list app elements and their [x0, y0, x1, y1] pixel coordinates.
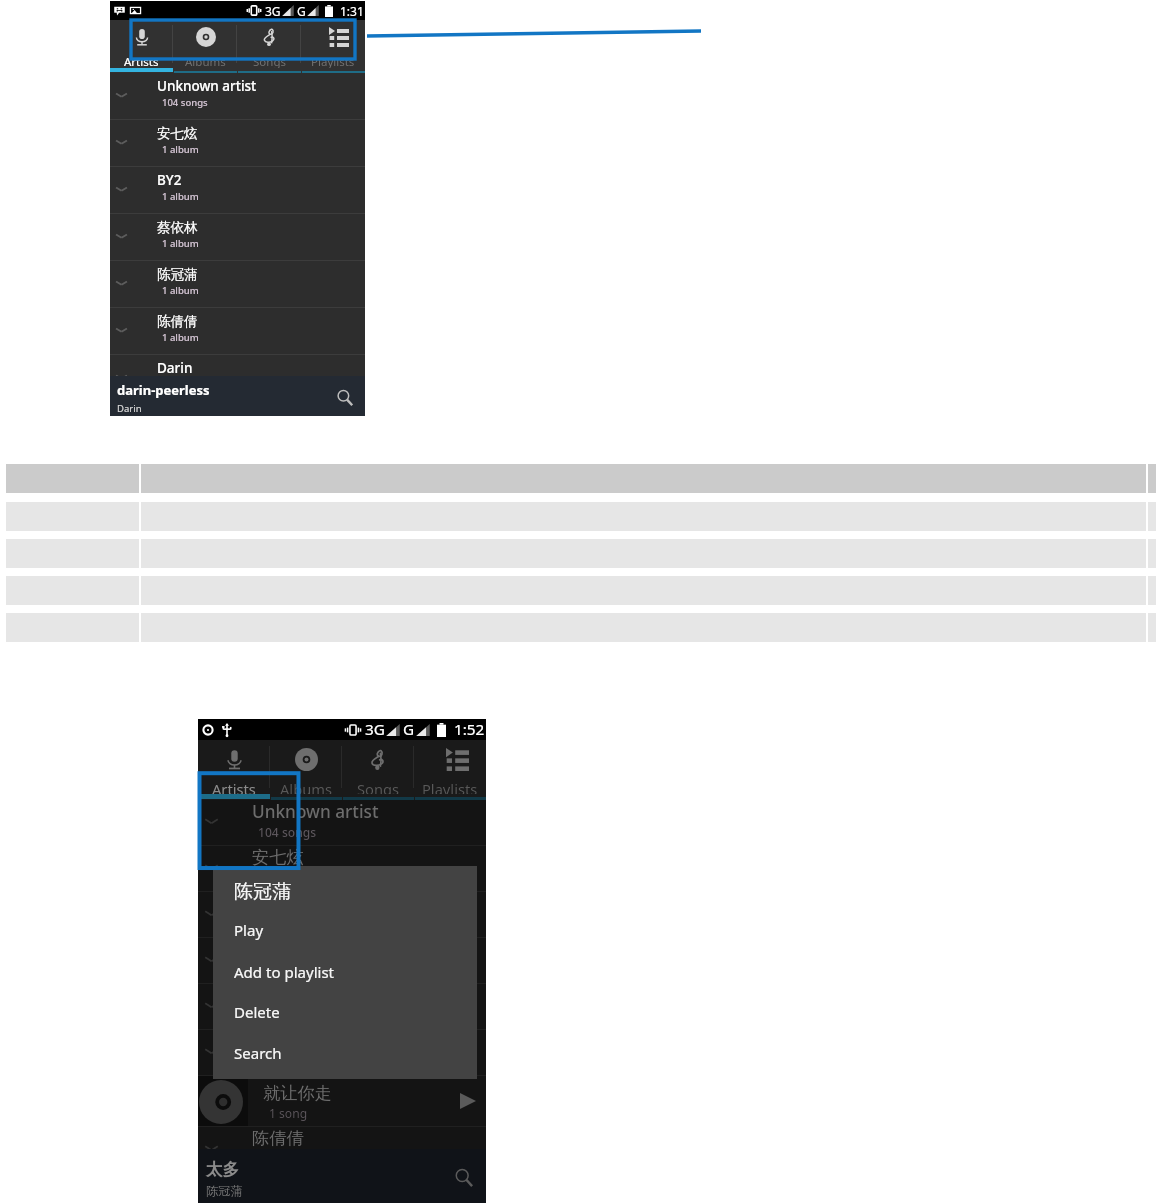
- staticText: 3G: [265, 3, 281, 19]
- staticText: 1 album: [258, 961, 305, 977]
- button[interactable]: 太多: [198, 1149, 486, 1203]
- staticText: 1:31: [340, 3, 364, 19]
- button[interactable]: 陈倩倩: [110, 308, 365, 355]
- button[interactable]: 陈冠蒲: [198, 1030, 486, 1076]
- button[interactable]: Albums: [270, 740, 342, 794]
- button[interactable]: 陈倩倩: [198, 1127, 486, 1173]
- staticText: 1 album: [162, 378, 199, 391]
- staticText: 陈冠蒲: [252, 1030, 304, 1052]
- staticText: darin-peerless: [117, 381, 210, 399]
- button[interactable]: 就让你走: [198, 1076, 486, 1127]
- staticText: 1 album: [258, 916, 305, 932]
- staticText: 1 album: [162, 190, 199, 203]
- button[interactable]: Artists: [198, 740, 270, 794]
- staticText: Unknown artist: [157, 77, 257, 95]
- staticText: Add to playlist: [234, 962, 335, 982]
- button[interactable]: Play: [213, 912, 477, 948]
- staticText: 蔡依林: [157, 219, 198, 236]
- button[interactable]: BY2: [198, 892, 486, 938]
- button[interactable]: 蔡依林: [198, 938, 486, 984]
- staticText: 陈倩倩: [252, 1127, 304, 1149]
- button[interactable]: Artists: [110, 20, 173, 68]
- staticText: 陈倩倩: [157, 313, 198, 330]
- button[interactable]: BY2: [110, 167, 365, 214]
- button[interactable]: Search: [213, 1035, 477, 1071]
- staticText: 蔡依林: [252, 938, 304, 960]
- button[interactable]: Search: [328, 381, 362, 415]
- button[interactable]: 安七炫: [198, 846, 486, 892]
- button[interactable]: Add to playlist: [213, 954, 477, 990]
- staticText: 1 album: [162, 237, 199, 250]
- staticText: 陈冠蒲: [206, 1183, 243, 1198]
- staticText: 就让你走: [263, 1082, 332, 1104]
- staticText: 1 album: [162, 284, 199, 297]
- staticText: 3G: [365, 719, 385, 740]
- staticText: Albums: [280, 779, 332, 794]
- staticText: Playlists: [422, 779, 478, 794]
- staticText: 陈冠蒲: [234, 880, 292, 904]
- button[interactable]: 陈冠蒲: [198, 984, 486, 1030]
- button[interactable]: Darin: [110, 355, 365, 402]
- button[interactable]: 陈冠蒲: [213, 874, 477, 910]
- staticText: Songs: [253, 54, 286, 68]
- staticText: Artists: [212, 779, 256, 794]
- staticText: G: [403, 719, 415, 740]
- button[interactable]: Unknown artist: [110, 73, 365, 120]
- staticText: Songs: [357, 779, 400, 794]
- button[interactable]: Search: [445, 1159, 483, 1197]
- staticText: Darin: [157, 359, 193, 377]
- button[interactable]: Delete: [213, 994, 477, 1030]
- staticText: G: [297, 3, 306, 19]
- staticText: Albums: [185, 54, 226, 68]
- staticText: Delete: [234, 1002, 280, 1022]
- button[interactable]: Playlists: [301, 20, 365, 68]
- staticText: Playlists: [311, 54, 355, 68]
- button[interactable]: Unknown artist: [198, 800, 486, 846]
- staticText: 陈冠蒲: [157, 266, 198, 283]
- button[interactable]: darin-peerless: [110, 376, 365, 416]
- staticText: 太多: [206, 1159, 240, 1180]
- button[interactable]: 蔡依林: [110, 214, 365, 261]
- staticText: 104 songs: [258, 824, 317, 840]
- staticText: Play: [234, 920, 264, 940]
- staticText: 1 album: [162, 143, 199, 156]
- staticText: 1 album: [258, 1053, 305, 1069]
- button[interactable]: Songs: [237, 20, 301, 68]
- button[interactable]: Playlists: [414, 740, 486, 794]
- staticText: Search: [234, 1043, 282, 1063]
- button[interactable]: 安七炫: [110, 120, 365, 167]
- button[interactable]: Songs: [342, 740, 414, 794]
- button[interactable]: 陈冠蒲: [110, 261, 365, 308]
- staticText: 安七炫: [252, 846, 304, 868]
- staticText: Unknown artist: [252, 800, 379, 823]
- button[interactable]: Albums: [173, 20, 237, 68]
- staticText: Darin: [117, 402, 142, 415]
- staticText: 1 album: [258, 1007, 305, 1023]
- staticText: 1:52: [454, 719, 485, 740]
- staticText: 安七炫: [157, 125, 198, 142]
- staticText: BY2: [157, 171, 182, 189]
- staticText: 1 album: [258, 869, 305, 885]
- staticText: Artists: [124, 54, 159, 68]
- staticText: 104 songs: [162, 96, 208, 109]
- staticText: BY2: [252, 892, 284, 915]
- staticText: 1 album: [162, 331, 199, 344]
- staticText: 1 song: [269, 1105, 308, 1121]
